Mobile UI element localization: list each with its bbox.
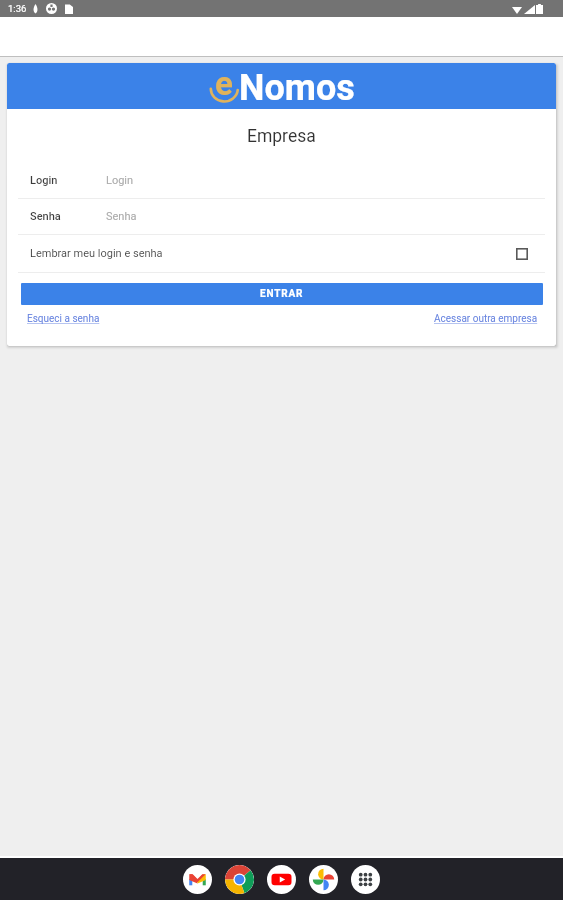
staticText: Senha	[30, 210, 61, 223]
staticText: Lembrar meu login e senha	[30, 247, 163, 260]
button[interactable]: ENTRAR	[21, 283, 543, 305]
button[interactable]: Lembrar meu login e senha	[7, 235, 556, 272]
button[interactable]: All apps	[351, 865, 380, 894]
staticText: 1:36	[8, 3, 27, 14]
staticText: Senha	[106, 210, 137, 223]
staticText: ENTRAR	[260, 288, 304, 300]
button[interactable]: YouTube	[267, 865, 296, 894]
staticText: Login	[30, 174, 58, 187]
staticText: e	[215, 64, 233, 103]
button[interactable]: Esqueci a senha	[27, 313, 100, 325]
staticText: Empresa	[247, 126, 316, 147]
button[interactable]: Senha	[7, 199, 556, 234]
button[interactable]: Chrome	[225, 865, 254, 894]
staticText: Nomos	[239, 67, 355, 109]
staticText: Login	[106, 174, 134, 187]
button[interactable]: Login	[7, 163, 556, 198]
button[interactable]: Acessar outra empresa	[434, 313, 538, 325]
button[interactable]: Photos	[309, 865, 338, 894]
button[interactable]: Gmail	[183, 865, 212, 894]
